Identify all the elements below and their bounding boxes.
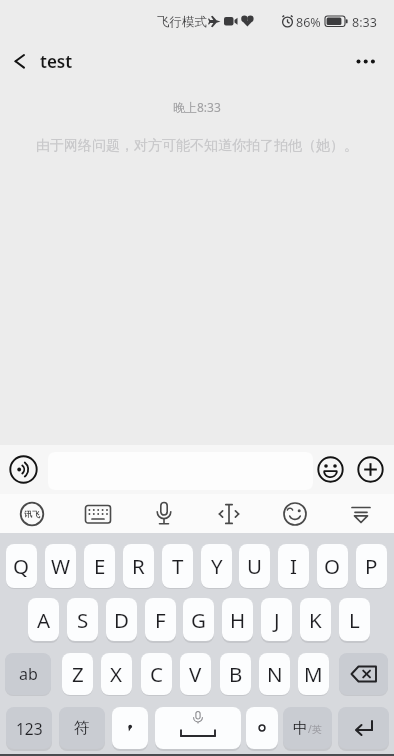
- button[interactable]: Z: [62, 653, 93, 695]
- button[interactable]: Y: [201, 544, 232, 588]
- button[interactable]: S: [67, 598, 98, 641]
- button[interactable]: [112, 707, 148, 749]
- button[interactable]: I: [278, 544, 309, 588]
- staticText: 讯飞: [24, 509, 40, 519]
- button[interactable]: [246, 707, 278, 749]
- button[interactable]: T: [162, 544, 193, 588]
- staticText: L: [349, 606, 360, 634]
- staticText: 中/英: [293, 719, 322, 738]
- button[interactable]: W: [45, 544, 76, 588]
- button[interactable]: B: [220, 653, 251, 695]
- button[interactable]: M: [298, 653, 329, 695]
- staticText: O: [324, 552, 341, 580]
- button[interactable]: E: [84, 544, 115, 588]
- staticText: U: [247, 552, 262, 580]
- staticText: T: [172, 552, 184, 580]
- staticText: A: [37, 606, 51, 634]
- staticText: Y: [211, 552, 223, 580]
- staticText: M: [304, 660, 323, 688]
- button[interactable]: [338, 707, 389, 749]
- button[interactable]: N: [259, 653, 290, 695]
- staticText: 123: [16, 718, 43, 739]
- staticText: R: [132, 552, 145, 580]
- button[interactable]: P: [356, 544, 387, 588]
- staticText: J: [274, 606, 280, 634]
- button[interactable]: D: [106, 598, 137, 641]
- staticText: C: [150, 660, 163, 688]
- button[interactable]: Q: [6, 544, 37, 588]
- button[interactable]: J: [261, 598, 292, 641]
- button[interactable]: H: [222, 598, 253, 641]
- button[interactable]: [317, 456, 344, 483]
- button[interactable]: [339, 653, 388, 695]
- staticText: 86%: [296, 14, 321, 31]
- button[interactable]: 讯飞: [18, 500, 46, 528]
- button[interactable]: [4, 46, 36, 76]
- staticText: G: [191, 606, 206, 634]
- button[interactable]: F: [145, 598, 176, 641]
- staticText: test: [40, 50, 73, 73]
- staticText: H: [230, 606, 246, 634]
- button[interactable]: 符: [59, 707, 105, 749]
- staticText: 飞行模式: [157, 14, 207, 30]
- staticText: X: [110, 660, 123, 688]
- staticText: 8:33: [352, 14, 377, 31]
- staticText: 晚上8:33: [173, 99, 221, 115]
- button[interactable]: [150, 500, 178, 528]
- button[interactable]: O: [317, 544, 348, 588]
- staticText: B: [229, 660, 243, 688]
- button[interactable]: A: [28, 598, 59, 641]
- staticText: E: [94, 552, 106, 580]
- button[interactable]: G: [183, 598, 214, 641]
- staticText: I: [290, 552, 297, 580]
- staticText: W: [51, 552, 71, 580]
- staticText: N: [267, 660, 283, 688]
- button[interactable]: ab: [5, 653, 51, 695]
- staticText: Q: [13, 552, 30, 580]
- button[interactable]: X: [101, 653, 132, 695]
- button[interactable]: L: [339, 598, 370, 641]
- button[interactable]: 123: [6, 707, 52, 749]
- staticText: P: [365, 552, 378, 580]
- staticText: K: [309, 606, 322, 634]
- staticText: 符: [74, 718, 90, 738]
- staticText: S: [77, 606, 89, 634]
- button[interactable]: K: [300, 598, 331, 641]
- staticText: D: [114, 606, 129, 634]
- staticText: V: [189, 660, 202, 688]
- button[interactable]: [348, 46, 384, 76]
- button[interactable]: V: [180, 653, 211, 695]
- button[interactable]: R: [123, 544, 154, 588]
- button[interactable]: 中/英: [283, 707, 332, 749]
- button[interactable]: [281, 500, 309, 528]
- button[interactable]: U: [239, 544, 270, 588]
- button[interactable]: [347, 500, 375, 528]
- button[interactable]: [215, 500, 243, 528]
- staticText: F: [155, 606, 166, 634]
- button[interactable]: C: [141, 653, 172, 695]
- button[interactable]: [357, 456, 384, 483]
- staticText: Z: [72, 660, 84, 688]
- button[interactable]: [155, 707, 241, 749]
- staticText: ab: [19, 663, 38, 685]
- button[interactable]: [84, 500, 112, 528]
- button[interactable]: [8, 454, 39, 485]
- staticText: 由于网络问题，对方可能不知道你拍了拍他（她）。: [36, 137, 358, 155]
